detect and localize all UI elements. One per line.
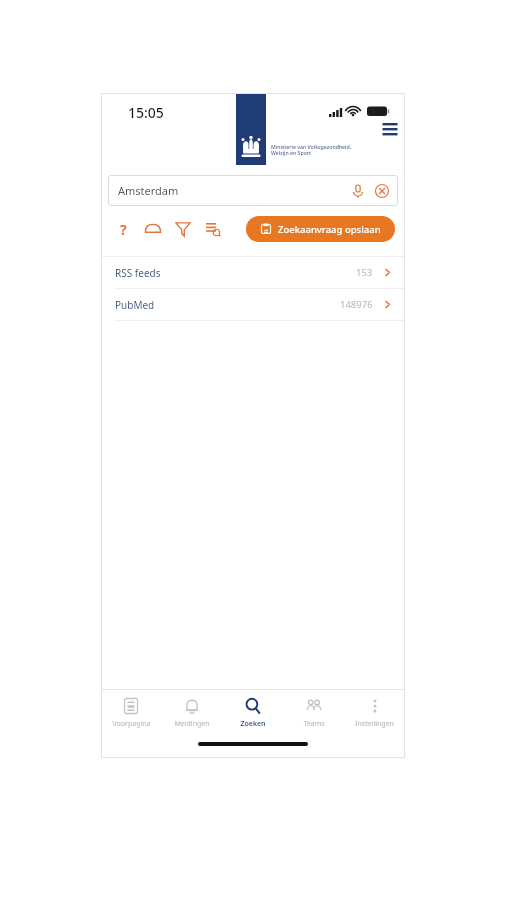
- staticText: Voorpagina: [112, 719, 151, 729]
- button[interactable]: Clear search: [374, 183, 390, 199]
- button[interactable]: Meldingen: [161, 693, 222, 733]
- button[interactable]: RSS feeds: [101, 257, 405, 288]
- button[interactable]: Teams: [283, 693, 344, 733]
- staticText: Zoeken: [240, 719, 266, 729]
- button[interactable]: Menu: [379, 118, 401, 140]
- staticText: Instellingen: [355, 719, 394, 729]
- button[interactable]: Amsterdam: [108, 175, 398, 206]
- staticText: Zoekaanvraag opslaan: [278, 223, 381, 236]
- button[interactable]: Help: [111, 217, 135, 241]
- button[interactable]: Cloud: [141, 217, 165, 241]
- button[interactable]: Zoekaanvraag opslaan: [246, 216, 395, 242]
- staticText: 153: [356, 266, 373, 279]
- staticText: ?: [120, 220, 127, 239]
- button[interactable]: PubMed: [101, 289, 405, 320]
- staticText: Amsterdam: [118, 183, 179, 198]
- button[interactable]: Voorpagina: [101, 693, 161, 733]
- staticText: 15:05: [128, 103, 164, 122]
- staticText: Teams: [303, 719, 325, 729]
- button[interactable]: Filter: [171, 217, 195, 241]
- staticText: 148976: [340, 298, 373, 311]
- button[interactable]: Zoeken: [222, 693, 283, 733]
- staticText: RSS feeds: [115, 266, 161, 280]
- button[interactable]: Instellingen: [344, 693, 405, 733]
- staticText: PubMed: [115, 298, 155, 312]
- staticText: Meldingen: [174, 719, 210, 729]
- button[interactable]: Voice search: [350, 183, 366, 199]
- button[interactable]: Search history: [201, 217, 225, 241]
- staticText: Ministerie van Volksgezondheid, Welzijn …: [271, 143, 391, 157]
